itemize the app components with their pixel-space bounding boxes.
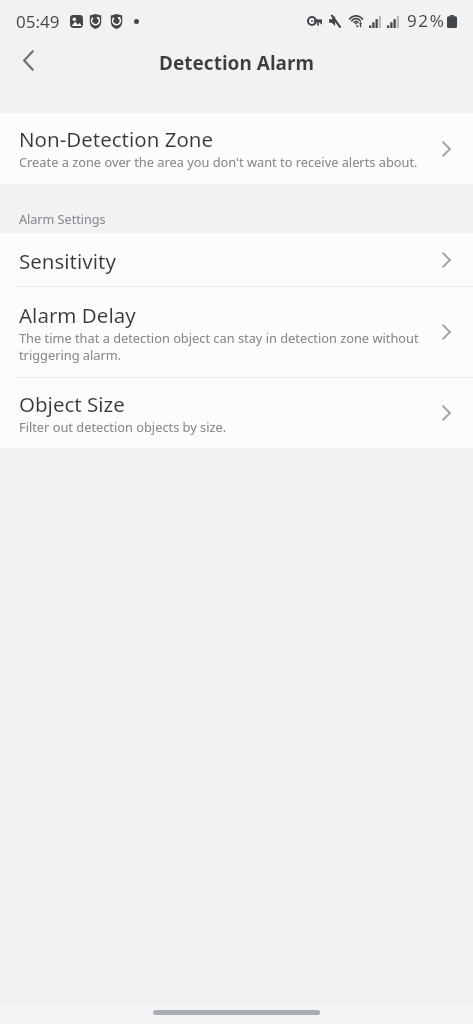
- staticText: The time that a detection object can sta…: [19, 329, 425, 363]
- button[interactable]: Back: [6, 38, 50, 82]
- button[interactable]: Non-Detection Zone: [0, 113, 473, 184]
- staticText: Non-Detection Zone: [19, 125, 214, 153]
- staticText: Detection Alarm: [159, 50, 314, 76]
- staticText: Create a zone over the area you don't wa…: [19, 153, 418, 170]
- staticText: Object Size: [19, 390, 125, 418]
- staticText: Sensitivity: [19, 247, 116, 275]
- button[interactable]: Alarm Delay: [0, 287, 473, 377]
- staticText: 05:49: [16, 10, 60, 33]
- staticText: Alarm Settings: [19, 211, 106, 228]
- staticText: Filter out detection objects by size.: [19, 418, 227, 435]
- button[interactable]: Object Size: [0, 378, 473, 448]
- staticText: 92%: [407, 9, 446, 32]
- staticText: Alarm Delay: [19, 301, 136, 329]
- button[interactable]: Sensitivity: [0, 233, 473, 286]
